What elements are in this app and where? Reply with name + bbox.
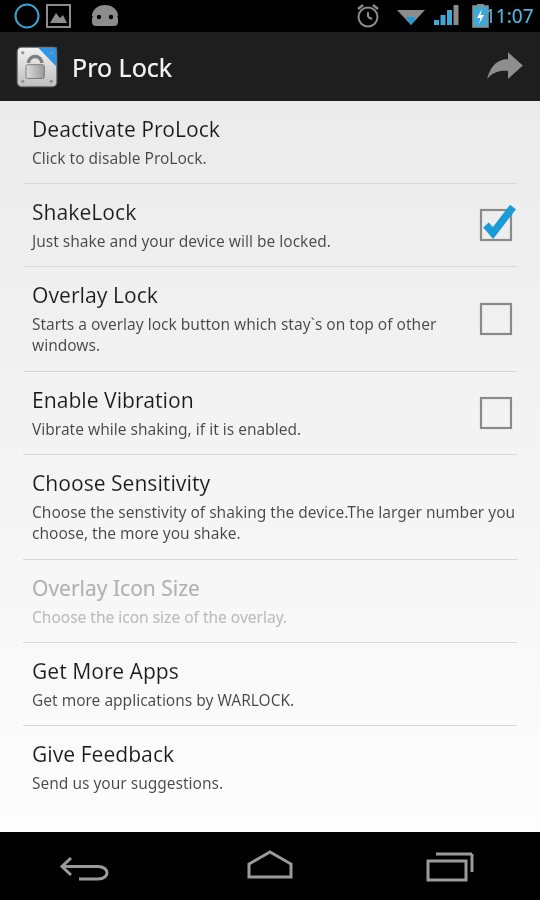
staticText: Vibrate while shaking, if it is enabled. xyxy=(32,418,302,439)
staticText: Overlay Icon Size xyxy=(32,574,200,603)
button[interactable]: Overlay Lock xyxy=(0,267,540,371)
button[interactable]: Overlay Lock xyxy=(474,297,518,341)
button[interactable]: Enable Vibration xyxy=(474,391,518,435)
staticText: Click to disable ProLock. xyxy=(32,147,207,168)
staticText: Send us your suggestions. xyxy=(32,772,224,793)
staticText: Just shake and your device will be locke… xyxy=(32,230,331,251)
staticText: 11:07 xyxy=(485,3,534,29)
staticText: Starts a overlay lock button which stay`… xyxy=(32,313,460,356)
button[interactable]: Overlay Icon Size xyxy=(0,560,540,642)
staticText: Choose the senstivity of shaking the dev… xyxy=(32,501,518,544)
button[interactable]: Choose Sensitivity xyxy=(0,455,540,559)
button[interactable]: Recent apps xyxy=(360,832,540,900)
staticText: Choose the icon size of the overlay. xyxy=(32,606,288,627)
button[interactable]: Enable Vibration xyxy=(0,372,540,454)
button[interactable]: Home xyxy=(180,832,360,900)
staticText: Deactivate ProLock xyxy=(32,115,221,144)
staticText: Overlay Lock xyxy=(32,281,158,310)
button[interactable]: Get More Apps xyxy=(0,643,540,725)
button[interactable]: Share xyxy=(468,32,540,101)
button[interactable]: Deactivate ProLock xyxy=(0,101,540,183)
staticText: Give Feedback xyxy=(32,740,175,769)
button[interactable]: ShakeLock xyxy=(474,203,518,247)
staticText: Get More Apps xyxy=(32,657,179,686)
staticText: Pro Lock xyxy=(72,50,173,84)
button[interactable]: Back xyxy=(0,832,180,900)
staticText: Get more applications by WARLOCK. xyxy=(32,689,295,710)
staticText: Enable Vibration xyxy=(32,386,194,415)
button[interactable]: Give Feedback xyxy=(0,726,540,808)
staticText: ShakeLock xyxy=(32,198,137,227)
button[interactable]: ShakeLock xyxy=(0,184,540,266)
staticText: Choose Sensitivity xyxy=(32,469,211,498)
